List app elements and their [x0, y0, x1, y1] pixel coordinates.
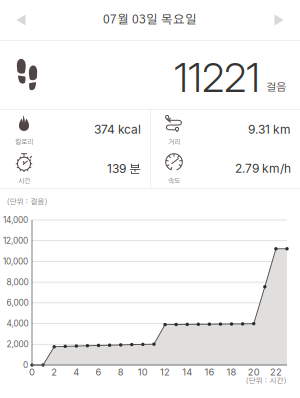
staticText: 6 [95, 366, 101, 378]
staticText: (단위 : 걸음) [6, 198, 47, 206]
staticText: 4,000 [6, 319, 28, 329]
staticText: 9.31 km [248, 122, 291, 137]
staticText: (단위 : 시간) [245, 377, 286, 385]
staticText: 칼로리 [15, 139, 33, 145]
button[interactable]: Next day [258, 0, 300, 40]
staticText: 22 [270, 366, 282, 378]
staticText: 20 [248, 366, 260, 378]
staticText: 시간 [18, 178, 30, 184]
staticText: 4 [73, 366, 79, 378]
button[interactable]: 거리 [150, 110, 300, 149]
staticText: 거리 [168, 139, 180, 145]
staticText: 8 [118, 366, 124, 378]
staticText: 걸음 [266, 82, 286, 93]
staticText: 10 [138, 366, 148, 378]
staticText: 12,000 [3, 236, 28, 246]
staticText: 2.79 km/h [235, 161, 291, 176]
button[interactable]: 시간 [0, 149, 150, 188]
staticText: 139 분 [107, 161, 141, 176]
staticText: 12 [160, 366, 170, 378]
button[interactable]: 칼로리 [0, 110, 150, 149]
staticText: 16 [204, 366, 214, 378]
staticText: 18 [227, 366, 237, 378]
staticText: 6,000 [6, 298, 28, 308]
staticText: 10,000 [3, 256, 28, 266]
staticText: 14 [182, 366, 192, 378]
staticText: 374 kcal [94, 122, 141, 137]
button[interactable]: Previous day [0, 0, 42, 40]
staticText: 07월 03일 목요일 [103, 14, 197, 26]
staticText: 8,000 [6, 277, 28, 287]
staticText: 14,000 [3, 215, 28, 225]
staticText: 2,000 [6, 339, 28, 349]
button[interactable]: 속도 [150, 149, 300, 188]
staticText: 속도 [168, 178, 180, 184]
staticText: 0 [29, 366, 35, 378]
staticText: 2 [51, 366, 57, 378]
staticText: 11221 [174, 53, 260, 102]
staticText: 0 [23, 360, 28, 370]
